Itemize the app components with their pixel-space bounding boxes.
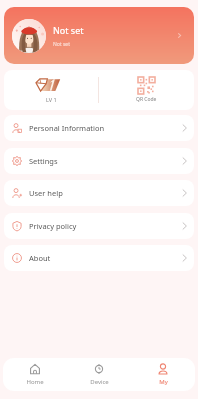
staticText: My xyxy=(159,378,168,386)
staticText: Privacy policy xyxy=(29,221,77,231)
button[interactable]: LV 1 xyxy=(4,70,98,110)
staticText: Home xyxy=(26,378,44,386)
staticText: Not set xyxy=(53,24,84,36)
button[interactable]: User help xyxy=(4,180,194,206)
button[interactable]: About xyxy=(4,245,194,271)
staticText: Device xyxy=(90,378,109,386)
staticText: LV 1 xyxy=(46,96,57,103)
button[interactable]: Not set xyxy=(4,7,194,64)
staticText: Personal Information xyxy=(29,123,105,133)
button[interactable]: My xyxy=(131,358,195,391)
button[interactable]: Device xyxy=(67,358,131,391)
staticText: About xyxy=(29,253,51,263)
button[interactable]: Privacy policy xyxy=(4,213,194,239)
staticText: Not set xyxy=(53,41,70,48)
button[interactable]: Personal Information xyxy=(4,115,194,141)
button[interactable]: QR Code xyxy=(99,70,194,110)
staticText: User help xyxy=(29,188,63,198)
staticText: QR Code xyxy=(136,96,157,103)
button[interactable]: Home xyxy=(3,358,67,391)
staticText: Settings xyxy=(29,156,58,166)
button[interactable]: Settings xyxy=(4,148,194,174)
